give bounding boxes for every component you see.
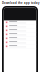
staticText: Download the app today	[2, 1, 39, 5]
